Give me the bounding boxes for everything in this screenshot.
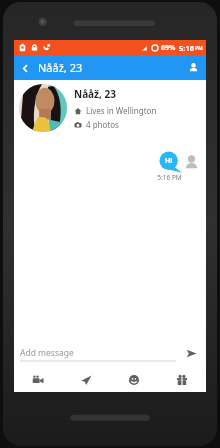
staticText: 5:16 bbox=[179, 43, 194, 53]
staticText: PM bbox=[195, 45, 203, 52]
button[interactable]: Add message bbox=[20, 340, 176, 366]
staticText: 4 photos bbox=[86, 119, 119, 130]
staticText: Add message bbox=[20, 347, 74, 359]
button[interactable]: Send bbox=[182, 344, 200, 362]
button[interactable]: Nååž, 23 bbox=[14, 80, 206, 136]
button[interactable]: Back bbox=[14, 57, 36, 79]
staticText: 69% bbox=[161, 43, 176, 53]
staticText: Nååž, 23 bbox=[74, 87, 116, 101]
staticText: Hi bbox=[165, 156, 173, 166]
button[interactable]: Profile bbox=[181, 55, 206, 80]
staticText: Lives in Wellington bbox=[86, 105, 157, 116]
staticText: 5:16 PM bbox=[157, 173, 182, 182]
button[interactable]: Video bbox=[14, 368, 62, 392]
staticText: Nååž, 23 bbox=[38, 60, 181, 75]
button[interactable]: Gift bbox=[158, 368, 206, 392]
button[interactable]: Send message bbox=[62, 368, 110, 392]
button[interactable]: Emoji bbox=[110, 368, 158, 392]
